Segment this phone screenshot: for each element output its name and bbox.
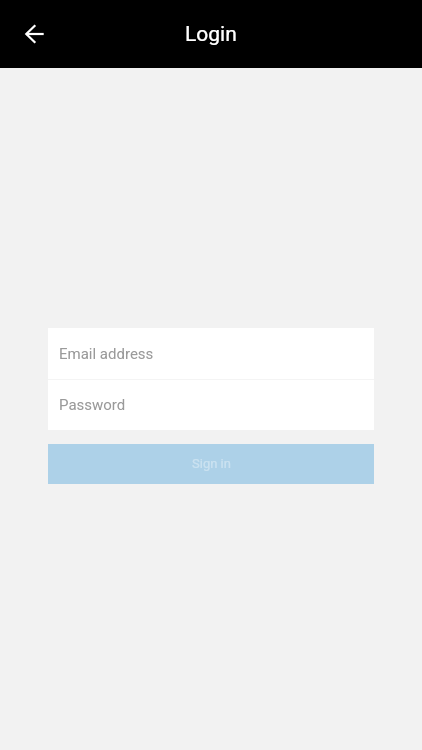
- button[interactable]: Email address: [48, 328, 374, 379]
- staticText: Login: [185, 22, 237, 47]
- staticText: Password: [59, 396, 126, 414]
- staticText: Sign in: [192, 456, 231, 471]
- button[interactable]: Password: [48, 379, 374, 430]
- button[interactable]: Back: [11, 10, 59, 58]
- staticText: Email address: [59, 345, 154, 363]
